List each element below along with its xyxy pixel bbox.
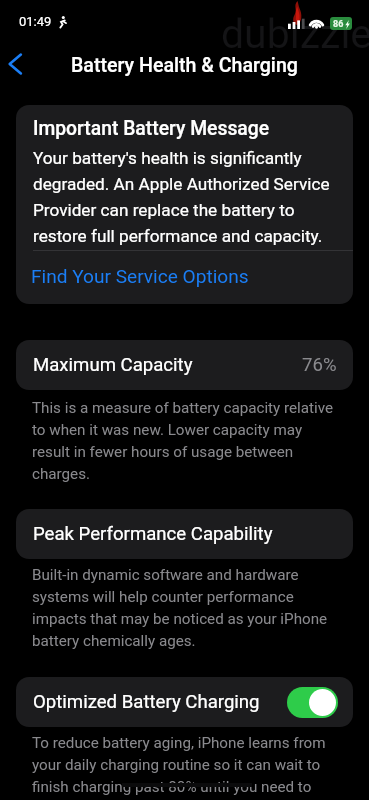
staticText: Maximum Capacity [33, 354, 193, 376]
button[interactable]: Find Your Service Options [16, 251, 353, 304]
staticText: 86 [333, 19, 344, 29]
button[interactable]: Optimized Battery Charging [287, 687, 338, 718]
staticText: Battery Health & Charging [71, 53, 298, 77]
staticText: Your battery's health is significantly d… [33, 144, 338, 248]
staticText: Find Your Service Options [31, 264, 249, 288]
button[interactable]: Maximum Capacity [16, 340, 353, 390]
button[interactable]: Back [0, 42, 46, 88]
staticText: To reduce battery aging, iPhone learns f… [32, 731, 338, 797]
button[interactable]: Optimized Battery Charging [16, 677, 353, 727]
staticText: Built-in dynamic software and hardware s… [32, 563, 344, 651]
staticText: 76% [302, 354, 337, 376]
staticText: Important Battery Message [33, 116, 270, 140]
staticText: dubizzle [221, 10, 369, 58]
staticText: Peak Performance Capability [33, 523, 273, 545]
staticText: Optimized Battery Charging [33, 691, 260, 713]
staticText: 01:49 [19, 14, 52, 29]
button[interactable]: Peak Performance Capability [16, 509, 353, 559]
staticText: This is a measure of battery capacity re… [32, 396, 338, 484]
